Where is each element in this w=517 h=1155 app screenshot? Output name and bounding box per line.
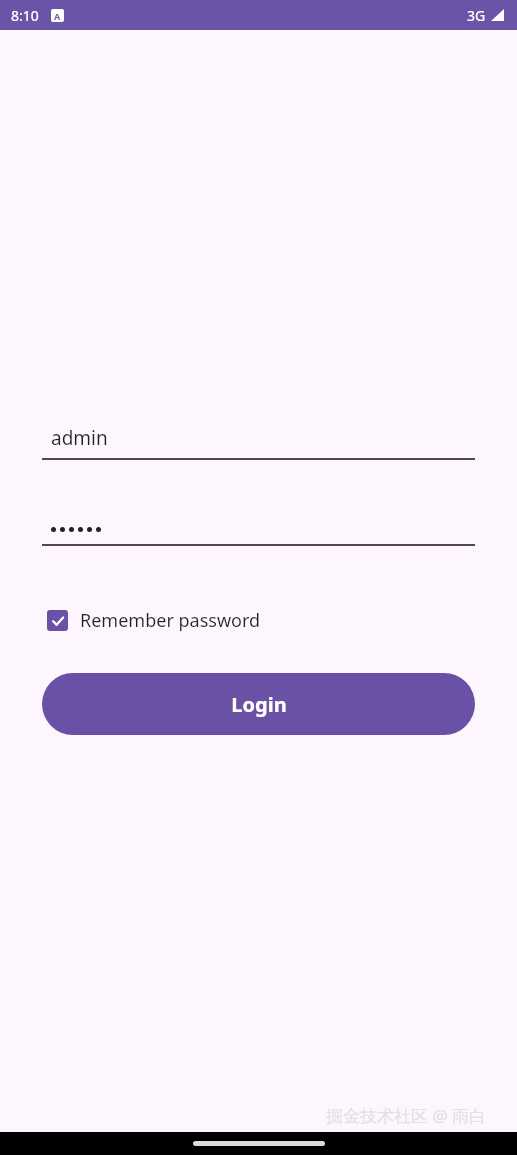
staticText: 8:10 — [11, 6, 39, 25]
staticText: 3G — [467, 6, 486, 25]
staticText: Remember password — [80, 608, 261, 633]
button[interactable] — [42, 504, 475, 546]
button[interactable]: admin — [42, 418, 475, 460]
staticText: Login — [231, 691, 287, 718]
button[interactable]: Remember password — [42, 606, 267, 635]
staticText: 掘金技术社区 @ 雨白 — [326, 1104, 487, 1127]
button[interactable]: Login — [42, 673, 475, 735]
staticText: admin — [51, 425, 108, 451]
staticText: A — [54, 10, 61, 22]
button[interactable]: Home — [193, 1141, 325, 1146]
